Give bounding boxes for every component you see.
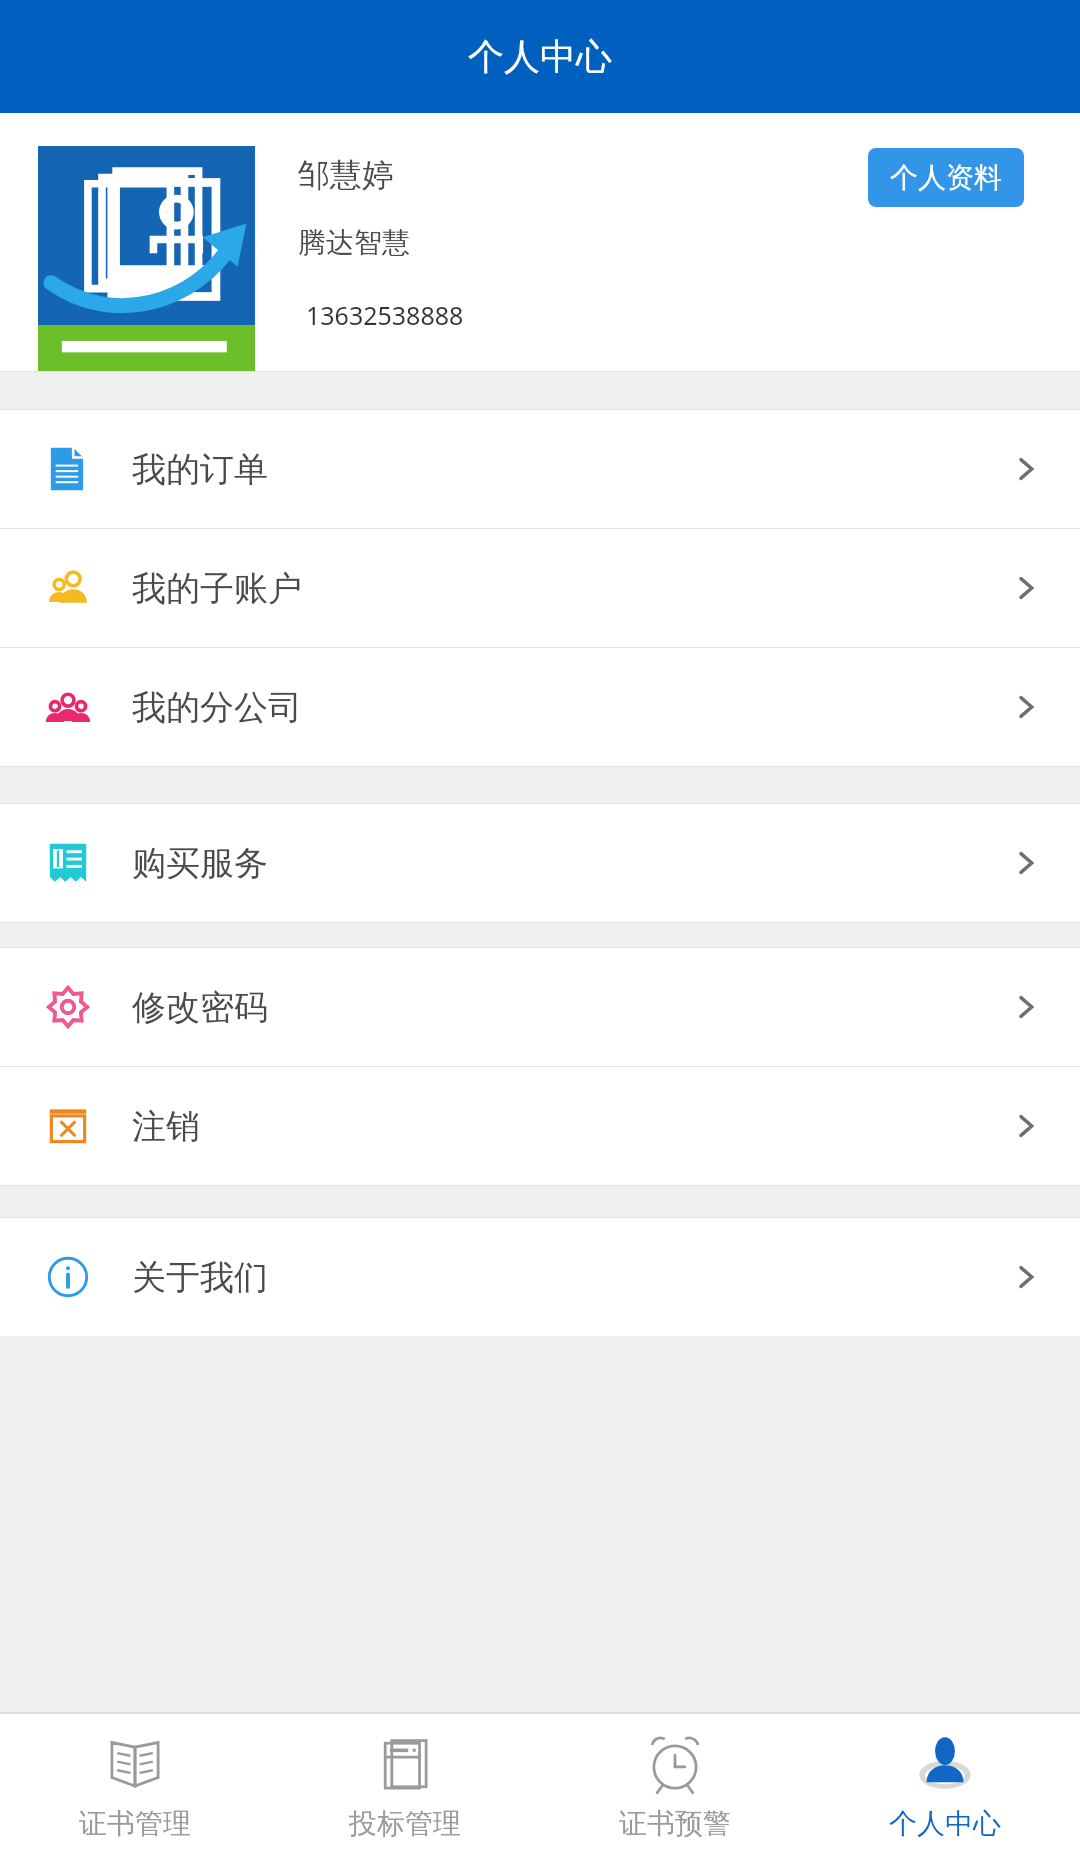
staticText: 个人中心 <box>889 1806 1001 1841</box>
button[interactable]: 投标管理 <box>270 1714 540 1860</box>
other: 个人中心 <box>912 1732 978 1798</box>
staticText: 腾达智慧 <box>298 225 410 260</box>
button[interactable]: 注销 <box>0 1067 1080 1185</box>
button[interactable]: 证书管理 <box>0 1714 270 1860</box>
staticText: 我的订单 <box>132 448 268 491</box>
staticText: 个人资料 <box>890 160 1002 195</box>
button[interactable]: 修改密码 <box>0 948 1080 1066</box>
button[interactable]: 购买服务 <box>0 804 1080 922</box>
staticText: 我的子账户 <box>132 567 302 610</box>
staticText: 证书预警 <box>619 1806 731 1841</box>
button[interactable]: 证书预警 <box>540 1714 810 1860</box>
staticText: 个人中心 <box>468 34 612 79</box>
button[interactable]: 我的订单 <box>0 410 1080 528</box>
staticText: 证书管理 <box>79 1806 191 1841</box>
staticText: 注销 <box>132 1105 200 1148</box>
button[interactable]: 个人资料 <box>868 148 1024 207</box>
staticText: 我的分公司 <box>132 686 302 729</box>
staticText: 购买服务 <box>132 842 268 885</box>
other: 证书预警 <box>642 1732 708 1798</box>
button[interactable]: 个人中心 <box>810 1714 1080 1860</box>
button[interactable]: 关于我们 <box>0 1218 1080 1336</box>
staticText: 13632538888 <box>306 298 464 332</box>
staticText: 投标管理 <box>349 1806 461 1841</box>
other: 证书管理 <box>102 1732 168 1798</box>
staticText: 修改密码 <box>132 986 268 1029</box>
staticText: 邹慧婷 <box>298 155 394 195</box>
staticText: 关于我们 <box>132 1256 268 1299</box>
other: 投标管理 <box>372 1732 438 1798</box>
staticText: 有效期：2020-02-01 <box>772 368 1021 405</box>
button[interactable]: 我的子账户 <box>0 529 1080 647</box>
button[interactable]: 我的分公司 <box>0 648 1080 766</box>
